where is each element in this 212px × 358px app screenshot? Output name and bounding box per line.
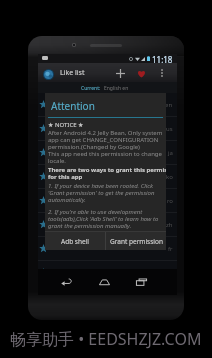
button[interactable]: zh: [38, 213, 177, 236]
button[interactable]: fr: [38, 237, 177, 260]
staticText: 畅享助手 • EEDSHZJZ.COM: [10, 328, 202, 350]
button[interactable]: Recent apps: [131, 272, 151, 292]
staticText: us: [166, 125, 173, 133]
staticText: ko: [166, 173, 173, 181]
button[interactable]: Back: [56, 272, 76, 292]
staticText: ★ NOTICE ★: [48, 121, 84, 129]
staticText: Adb shell: [61, 237, 89, 246]
staticText: Like list: [60, 68, 85, 78]
staticText: 1. If your device have been rooted. Clic…: [48, 182, 155, 204]
staticText: Attention: [51, 99, 95, 113]
button[interactable]: Adb shell: [45, 232, 105, 250]
staticText: After Android 4.2 Jelly Bean, Only syste…: [48, 129, 163, 165]
button[interactable]: Add: [112, 65, 129, 82]
button[interactable]: ko: [38, 165, 177, 188]
staticText: ja: [168, 149, 173, 157]
button[interactable]: us: [38, 117, 177, 140]
button[interactable]: Grant permission: [106, 232, 166, 250]
button[interactable]: More options: [154, 65, 170, 81]
staticText: en: [165, 101, 173, 109]
staticText: English en: [104, 85, 129, 92]
button[interactable]: it: [38, 261, 177, 284]
staticText: zh: [166, 221, 173, 229]
button[interactable]: ro: [38, 189, 177, 212]
button[interactable]: en: [38, 93, 177, 116]
staticText: ro: [167, 197, 173, 205]
button[interactable]: ja: [38, 141, 177, 164]
staticText: Grant permission: [110, 237, 163, 246]
staticText: 2. If you're able to use development too…: [48, 208, 159, 230]
button[interactable]: Favorites: [133, 65, 150, 82]
button[interactable]: App icon: [41, 67, 56, 82]
staticText: 11:18: [152, 54, 173, 63]
staticText: fr: [168, 245, 173, 253]
staticText: There are two ways to grant this permiss…: [48, 166, 166, 181]
button[interactable]: Home: [94, 272, 114, 292]
staticText: Current:: [81, 85, 101, 92]
